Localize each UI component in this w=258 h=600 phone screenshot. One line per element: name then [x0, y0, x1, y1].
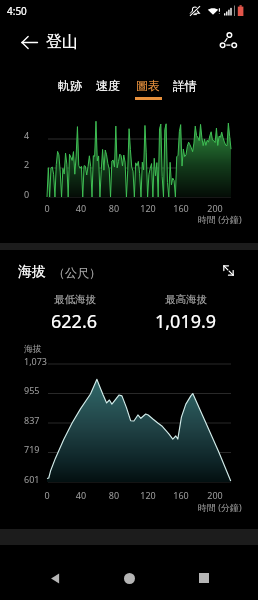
staticText: 詳情: [166, 78, 204, 93]
button[interactable]: Back: [14, 27, 44, 57]
staticText: 0: [33, 489, 61, 501]
staticText: 圖表: [129, 78, 167, 93]
staticText: （公尺）: [53, 265, 101, 280]
staticText: 40: [67, 202, 95, 214]
staticText: 時間 (分鐘): [198, 501, 242, 513]
staticText: 80: [100, 202, 128, 214]
staticText: 40: [67, 489, 95, 501]
button[interactable]: Share: [214, 27, 244, 57]
staticText: 時間 (分鐘): [198, 213, 242, 225]
staticText: 登山: [46, 32, 78, 52]
staticText: 160: [167, 489, 195, 501]
button[interactable]: 詳情: [166, 62, 204, 100]
staticText: 120: [134, 489, 162, 501]
staticText: 0: [24, 188, 30, 200]
staticText: 200: [201, 202, 229, 214]
button[interactable]: 速度: [89, 62, 127, 100]
staticText: 120: [134, 202, 162, 214]
staticText: 622.6: [51, 309, 98, 334]
staticText: 719: [24, 443, 40, 455]
button[interactable]: 最低海拔: [18, 293, 131, 334]
staticText: 4: [24, 129, 30, 141]
staticText: 200: [201, 489, 229, 501]
staticText: 最高海拔: [165, 293, 207, 306]
button[interactable]: Home: [109, 558, 149, 598]
staticText: 海拔: [18, 263, 46, 281]
button[interactable]: Recent apps: [184, 558, 224, 598]
button[interactable]: Back: [35, 558, 75, 598]
staticText: 837: [24, 414, 40, 426]
staticText: 軌跡: [51, 78, 89, 93]
staticText: 0: [33, 202, 61, 214]
staticText: 2: [24, 158, 30, 170]
button[interactable]: 軌跡: [51, 62, 89, 100]
staticText: 601: [24, 473, 40, 485]
button[interactable]: 圖表: [129, 62, 167, 100]
staticText: 80: [100, 489, 128, 501]
staticText: 海拔: [24, 343, 42, 354]
button[interactable]: 最高海拔: [129, 293, 242, 334]
staticText: 最低海拔: [54, 293, 96, 306]
staticText: 160: [167, 202, 195, 214]
staticText: 955: [24, 384, 40, 396]
staticText: 1,019.9: [155, 309, 217, 334]
staticText: 4:50: [7, 4, 27, 18]
staticText: 1,073: [24, 355, 48, 367]
button[interactable]: Expand chart: [214, 256, 242, 284]
staticText: 速度: [89, 78, 127, 93]
